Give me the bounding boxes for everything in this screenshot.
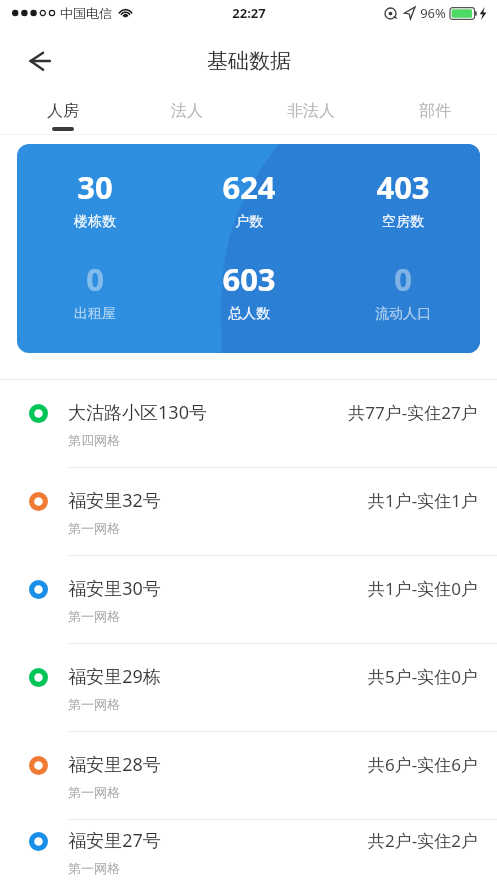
button[interactable]: 福安里32号 — [0, 468, 497, 555]
staticText: 第一网格 — [68, 784, 120, 800]
staticText: 共77户-实住27户 — [348, 401, 478, 424]
button[interactable]: 部件 — [373, 96, 497, 135]
staticText: 共6户-实住6户 — [368, 753, 478, 776]
staticText: 96% — [420, 4, 446, 22]
staticText: 403 — [376, 166, 430, 208]
staticText: 大沽路小区130号 — [68, 400, 207, 425]
staticText: 空房数 — [382, 213, 424, 231]
staticText: 福安里28号 — [68, 752, 161, 777]
button[interactable]: Back — [16, 37, 64, 85]
staticText: 福安里32号 — [68, 488, 161, 513]
staticText: 法人 — [171, 101, 203, 121]
staticText: 非法人 — [287, 101, 335, 121]
button[interactable]: 非法人 — [249, 96, 373, 135]
staticText: 603 — [222, 258, 276, 300]
staticText: 共1户-实住0户 — [368, 577, 478, 600]
staticText: 楼栋数 — [74, 213, 116, 231]
staticText: 0 — [394, 258, 412, 300]
staticText: 22:27 — [232, 4, 266, 22]
button[interactable]: 法人 — [125, 96, 249, 135]
staticText: 基础数据 — [207, 48, 291, 74]
button[interactable]: 福安里29栋 — [0, 644, 497, 731]
staticText: 户数 — [235, 213, 263, 231]
staticText: 第一网格 — [68, 608, 120, 624]
staticText: 共5户-实住0户 — [368, 665, 478, 688]
staticText: 第一网格 — [68, 696, 120, 712]
button[interactable]: 福安里30号 — [0, 556, 497, 643]
staticText: 中国电信 — [60, 5, 112, 21]
button[interactable]: 福安里27号 — [0, 820, 497, 883]
staticText: 福安里27号 — [68, 828, 161, 853]
button[interactable]: 大沽路小区130号 — [0, 380, 497, 467]
staticText: 第四网格 — [68, 432, 120, 448]
staticText: 第一网格 — [68, 860, 120, 876]
staticText: 部件 — [419, 101, 451, 121]
staticText: 第一网格 — [68, 520, 120, 536]
staticText: 福安里29栋 — [68, 664, 161, 689]
button[interactable]: 人房 — [0, 96, 125, 135]
staticText: 0 — [86, 258, 104, 300]
staticText: 人房 — [47, 101, 79, 121]
staticText: 总人数 — [228, 305, 270, 323]
button[interactable]: 30 — [17, 144, 480, 353]
staticText: 624 — [222, 166, 276, 208]
staticText: 共1户-实住1户 — [368, 489, 478, 512]
staticText: 流动人口 — [375, 305, 431, 323]
staticText: 福安里30号 — [68, 576, 161, 601]
staticText: 30 — [77, 166, 113, 208]
staticText: 共2户-实住2户 — [368, 829, 478, 852]
button[interactable]: 福安里28号 — [0, 732, 497, 819]
staticText: 出租屋 — [74, 305, 116, 323]
